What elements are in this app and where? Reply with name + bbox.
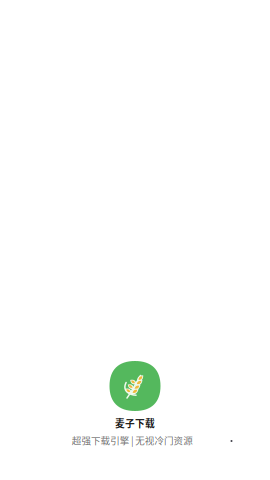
staticText: 超强下载引擎 | 无视冷门资源 (72, 433, 193, 447)
staticText: 麦子下载 (115, 416, 155, 430)
